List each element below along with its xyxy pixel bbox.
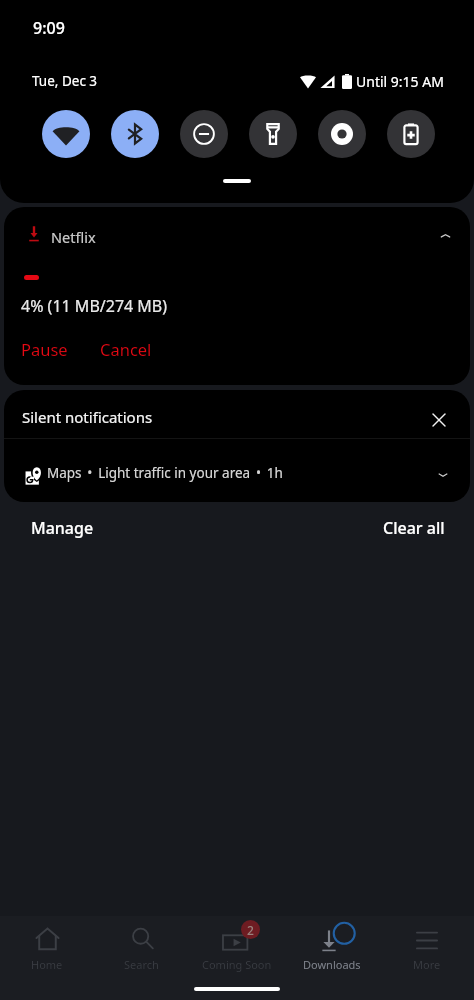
button[interactable]: Flashlight — [249, 110, 297, 158]
button[interactable]: Expand — [431, 463, 455, 487]
button[interactable]: Pause — [7, 332, 82, 366]
staticText: Cancel — [100, 338, 152, 360]
staticText: Pause — [21, 338, 68, 360]
staticText: Manage — [31, 517, 94, 539]
staticText: Clear all — [383, 517, 445, 539]
staticText: Tue, Dec 3 — [32, 72, 98, 90]
staticText: Silent notifications — [22, 407, 153, 427]
button[interactable]: Bluetooth — [111, 110, 159, 158]
staticText: Search — [124, 957, 159, 972]
button[interactable]: Manage — [23, 511, 102, 545]
button[interactable]: More — [379, 916, 474, 978]
button[interactable]: Do Not Disturb — [180, 110, 228, 158]
button[interactable]: Downloads — [284, 916, 379, 978]
button[interactable]: Screen record — [318, 110, 366, 158]
staticText: 2 — [247, 922, 254, 938]
button[interactable]: Home — [0, 916, 94, 978]
staticText: 9:09 — [33, 17, 65, 39]
button[interactable]: Search — [94, 916, 189, 978]
button[interactable]: Battery saver — [387, 110, 435, 158]
button[interactable]: Netflix — [4, 207, 470, 385]
staticText: Until 9:15 AM — [356, 72, 444, 91]
button[interactable]: Cancel — [86, 332, 166, 366]
staticText: 4% (11 MB/274 MB) — [21, 295, 168, 317]
staticText: Home — [31, 957, 63, 972]
button[interactable]: Maps • Light traffic in your area • 1h — [4, 439, 470, 502]
button[interactable]: 2 — [189, 916, 284, 978]
button[interactable]: Silent notifications — [4, 390, 470, 438]
staticText: More — [413, 957, 441, 972]
button[interactable]: Collapse — [434, 225, 456, 247]
staticText: Coming Soon — [202, 957, 272, 972]
staticText: Netflix — [51, 227, 96, 247]
staticText: Downloads — [303, 957, 361, 972]
button[interactable]: Wi-Fi — [42, 110, 90, 158]
staticText: Maps • Light traffic in your area • 1h — [47, 464, 283, 482]
button[interactable]: Clear all — [375, 511, 453, 545]
button[interactable]: Dismiss silent notifications — [427, 408, 450, 431]
